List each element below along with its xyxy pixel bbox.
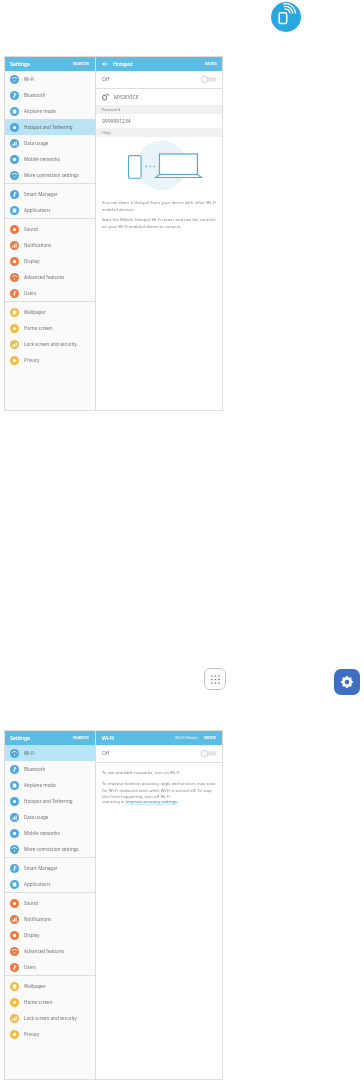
staticText: Airplane mode [24,108,56,114]
button[interactable]: Lock screen and security [4,1010,95,1026]
staticText: Sound [24,900,38,906]
staticText: Off [102,76,110,83]
staticText: Users [24,964,37,970]
button[interactable]: Airplane mode [4,777,95,793]
button[interactable]: Mobile networks [4,825,95,841]
staticText: Smart Manager [24,191,58,197]
button[interactable]: Notifications [4,911,95,927]
staticText: Mobile networks [24,156,60,162]
staticText: Home screen [24,999,53,1005]
button[interactable]: Home screen [4,994,95,1010]
staticText: scanning in [102,799,126,805]
button[interactable]: Bluetooth [4,761,95,777]
button[interactable]: Sound [4,221,95,237]
button[interactable]: Display [4,253,95,269]
button[interactable]: Apps [204,668,226,690]
button[interactable]: Settings [334,669,360,695]
staticText: Privacy [24,1031,40,1037]
staticText: SEARCH [73,61,89,67]
staticText: Sound [24,226,38,232]
button[interactable]: Privacy [4,1026,95,1042]
staticText: Wi-Fi [24,76,35,82]
button[interactable]: Wi-Fi [4,71,95,87]
button[interactable]: Bluetooth [4,87,95,103]
button[interactable]: Users [4,285,95,301]
button[interactable]: Hotspot and Tethering [4,793,95,809]
staticText: More connection settings [24,846,79,852]
button[interactable]: Hotspot and Tethering [4,119,95,135]
staticText: Smart Manager [24,865,58,871]
staticText: Hotspot and Tethering [24,124,73,130]
button[interactable]: Notifications [4,237,95,253]
staticText: Notifications [24,916,52,922]
staticText: Home screen [24,325,53,331]
button[interactable]: 9999991234 [96,114,223,128]
staticText: Data usage [24,814,49,820]
button[interactable]: Data usage [4,809,95,825]
button[interactable]: Home screen [4,320,95,336]
button[interactable]: Mobile Hotspot [271,2,301,32]
staticText: Start the Mobile Hotspot Wi-Fi router an… [102,217,217,229]
staticText: Airplane mode [24,782,56,788]
staticText: Bluetooth [24,766,46,772]
button[interactable]: Back [101,60,109,68]
staticText: Advanced features [24,948,65,954]
staticText: To improve location accuracy, apps and s… [102,781,217,799]
button[interactable]: Off [96,745,223,762]
button[interactable]: Data usage [4,135,95,151]
button[interactable]: Lock screen and security [4,336,95,352]
staticText: Wallpaper [24,983,46,989]
staticText: Hotspot [113,60,133,67]
staticText: Settings [10,60,30,67]
staticText: Notifications [24,242,52,248]
button[interactable]: More connection settings [4,841,95,857]
button[interactable]: Display [4,927,95,943]
staticText: Mobile networks [24,830,60,836]
staticText: Lock screen and security [24,1015,77,1021]
staticText: Privacy [24,357,40,363]
staticText: MORE [205,61,218,67]
staticText: Wi-Fi [102,734,114,741]
button[interactable]: Wallpaper [4,978,95,994]
button[interactable]: Privacy [4,352,95,368]
staticText: MORE [204,735,217,741]
staticText: Password [102,107,121,112]
button[interactable] [201,76,217,83]
button[interactable]: Wi-Fi [4,745,95,761]
staticText: 9999991234 [102,118,131,125]
button[interactable]: Off [96,71,223,88]
button[interactable]: Applications [4,876,95,892]
staticText: Wi-Fi Direct [175,735,198,741]
button[interactable]: Advanced features [4,943,95,959]
staticText: Lock screen and security [24,341,77,347]
staticText: More connection settings [24,172,79,178]
staticText: Settings [10,734,30,741]
button[interactable]: Airplane mode [4,103,95,119]
staticText: Display [24,932,40,938]
staticText: Off [102,750,110,757]
staticText: Wallpaper [24,309,46,315]
button[interactable]: Wallpaper [4,304,95,320]
staticText: You can share a Hotspot from your device… [102,200,217,212]
staticText: Users [24,290,37,296]
button[interactable]: Smart Manager [4,860,95,876]
button[interactable]: Mobile networks [4,151,95,167]
button[interactable]: Sound [4,895,95,911]
staticText: Help [102,130,111,135]
staticText: Advanced features [24,274,65,280]
button[interactable] [201,750,217,757]
staticText: Display [24,258,40,264]
staticText: To see available networks, turn on Wi-Fi… [102,770,181,776]
button[interactable]: Applications [4,202,95,218]
staticText: Applications [24,881,51,887]
button[interactable]: MYDEVICE [96,89,223,105]
staticText: Hotspot and Tethering [24,798,73,804]
staticText: . [178,799,180,805]
button[interactable]: More connection settings [4,167,95,183]
button[interactable]: Advanced features [4,269,95,285]
staticText: SEARCH [73,735,89,741]
staticText: Applications [24,207,51,213]
button[interactable]: Smart Manager [4,186,95,202]
staticText: Data usage [24,140,49,146]
button[interactable]: Users [4,959,95,975]
